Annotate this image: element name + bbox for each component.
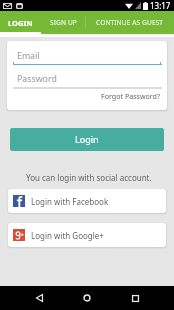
staticText: Login with Facebook (31, 196, 109, 207)
staticText: CONTINUE AS GUEST (96, 18, 164, 27)
staticText: LOGIN (8, 18, 33, 28)
staticText: Login with Google+ (31, 230, 104, 241)
staticText: Email (17, 50, 40, 62)
button[interactable]: Forgot Password? (101, 91, 161, 101)
staticText: SIGN UP (50, 18, 77, 27)
button[interactable]: LOGIN (0, 11, 41, 34)
button[interactable]: Back (23, 286, 55, 310)
button[interactable]: Recent apps (119, 286, 151, 310)
staticText: Password (17, 73, 57, 85)
staticText: 13:17 (150, 0, 171, 11)
button[interactable]: Login with Google+ (8, 223, 166, 247)
button[interactable]: CONTINUE AS GUEST (85, 11, 174, 34)
button[interactable]: Login with Facebook (8, 189, 166, 213)
staticText: Login (75, 133, 99, 145)
staticText: You can login with social account. (26, 172, 152, 183)
button[interactable]: Login (10, 128, 164, 151)
button[interactable]: SIGN UP (41, 11, 85, 34)
button[interactable]: Home (71, 286, 103, 310)
